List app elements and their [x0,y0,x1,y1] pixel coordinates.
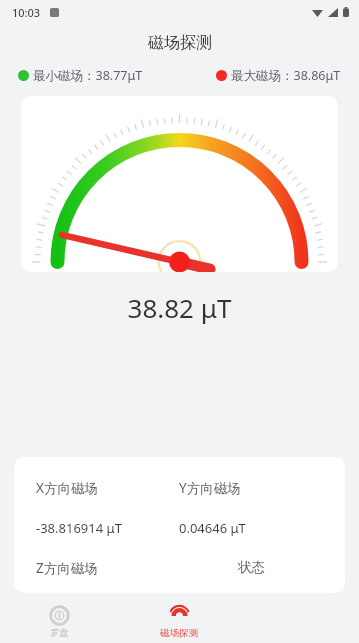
staticText: 最大磁场：38.86μT [231,67,341,84]
staticText: Z方向磁场 [36,559,179,577]
staticText: 10:03 [12,5,41,20]
button[interactable]: 罗盘 [0,601,119,643]
staticText: 罗盘 [50,627,69,639]
staticText: X方向磁场 [36,479,179,497]
staticText: 磁场探测 [148,33,212,53]
staticText: Y方向磁场 [179,479,323,497]
staticText: 0.04646 μT [179,519,323,537]
staticText: -38.816914 μT [36,519,179,537]
staticText: 状态 [238,559,265,576]
staticText: 38.82 μT [0,290,359,325]
staticText: 磁场探测 [160,627,198,639]
staticText: 最小磁场：38.77μT [33,67,143,84]
button[interactable]: 磁场探测 [119,601,239,643]
